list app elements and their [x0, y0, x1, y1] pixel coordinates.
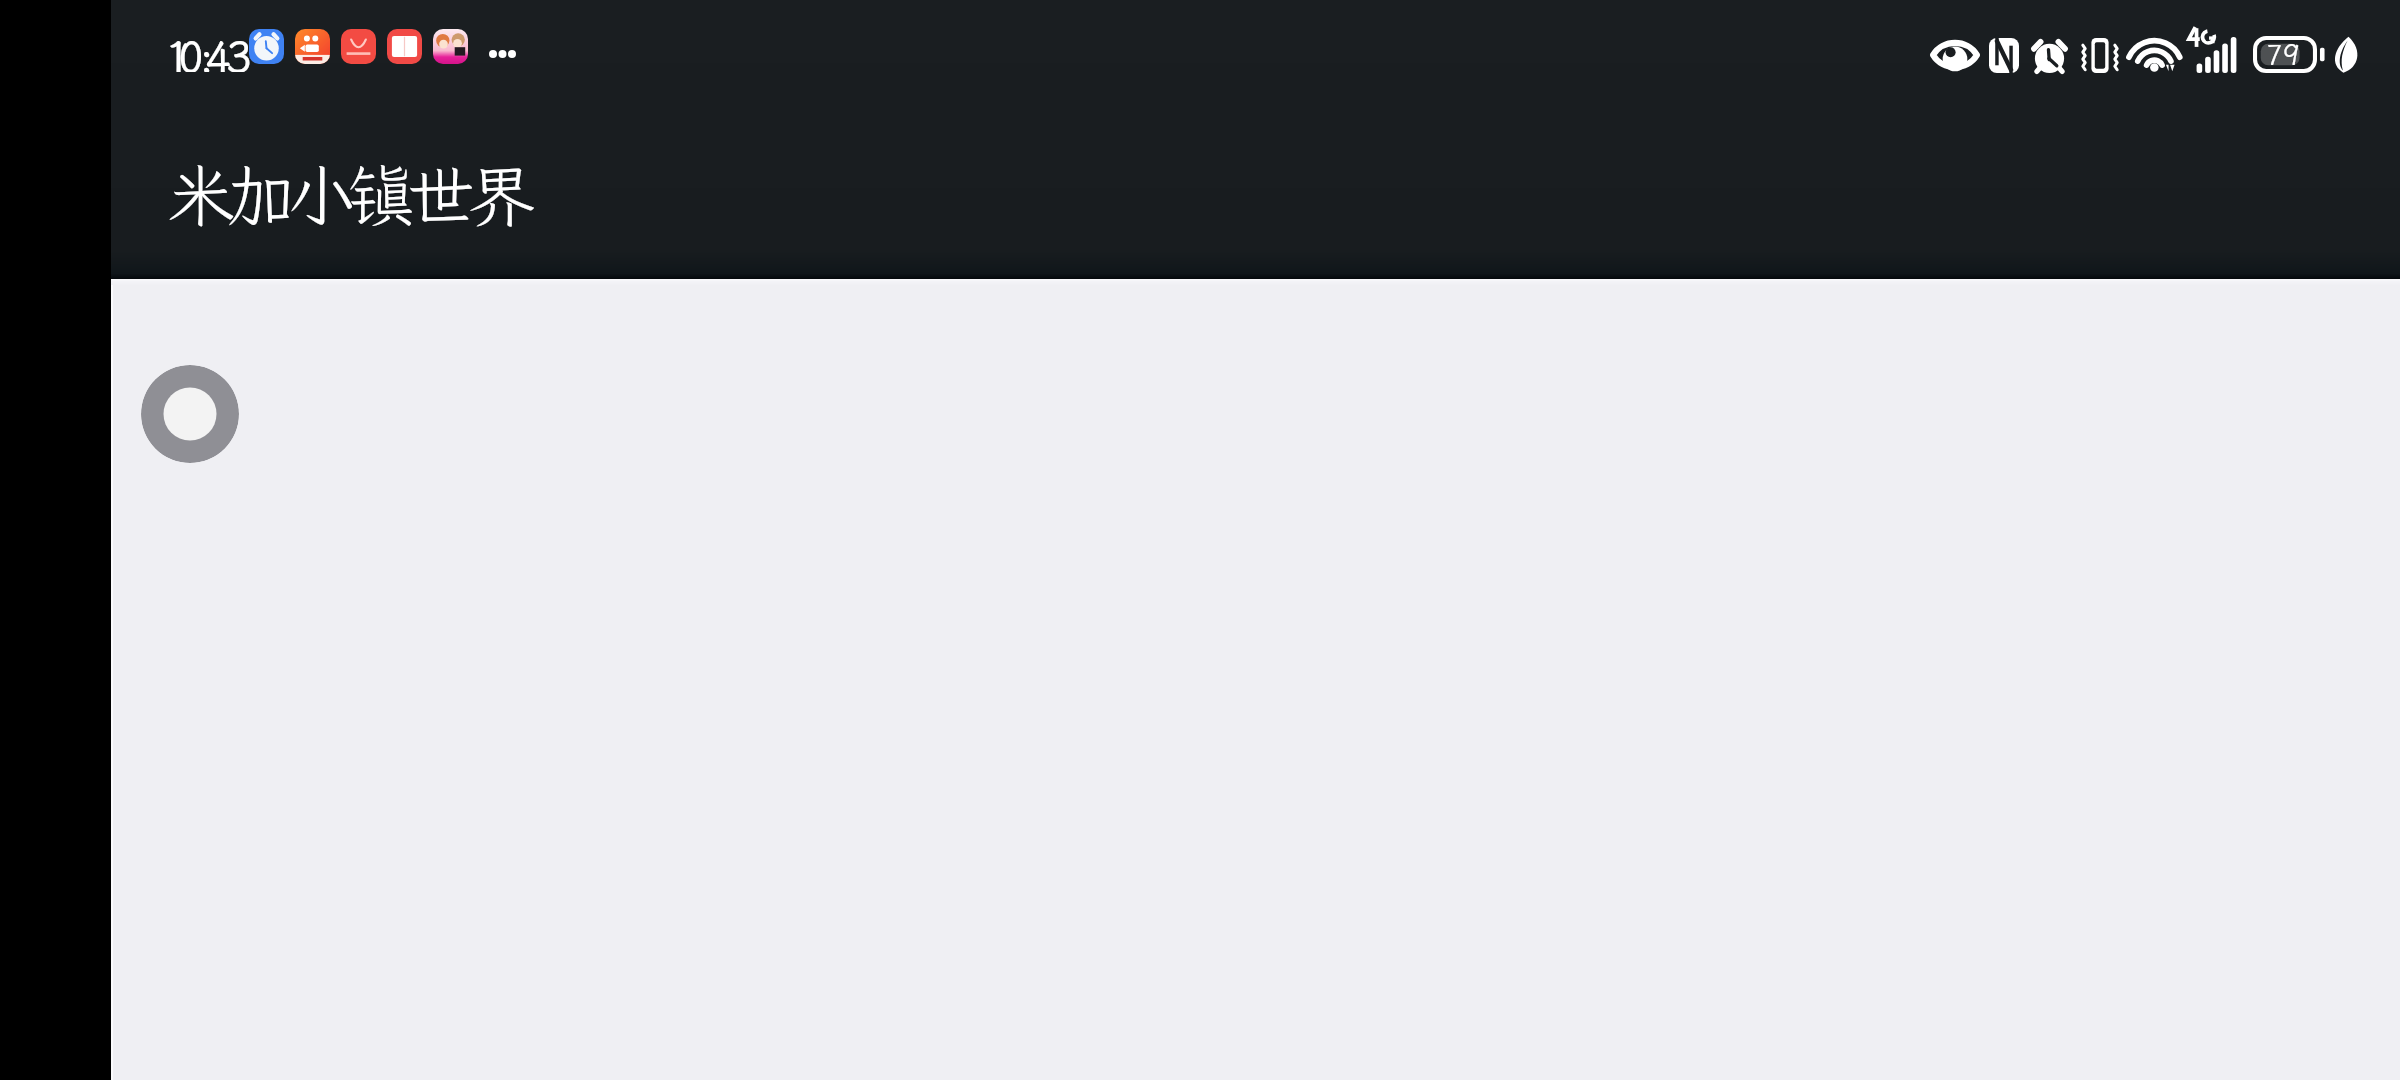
button[interactable]: Alarm app notification — [249, 29, 284, 64]
button[interactable]: Eye comfort — [1933, 41, 1977, 69]
staticText: 米加小镇世界 — [167, 150, 528, 240]
staticText: 79 — [2266, 36, 2300, 73]
button[interactable]: Reader app notification — [387, 29, 422, 64]
button[interactable]: More notifications — [483, 38, 521, 70]
staticText: 0 — [178, 28, 204, 72]
button[interactable]: Video app notification — [295, 29, 330, 64]
button[interactable]: Vibrate mode — [2080, 37, 2120, 74]
button[interactable]: Clock 10:43 — [165, 28, 249, 72]
button[interactable]: NFC — [1989, 38, 2019, 73]
button[interactable]: Power saving — [2330, 36, 2358, 73]
button[interactable]: Wi-Fi connected — [2135, 38, 2178, 72]
staticText: 3 — [226, 28, 252, 72]
button[interactable]: Mobile signal — [2195, 35, 2240, 73]
button[interactable]: Battery 79 percent — [2253, 36, 2327, 73]
staticText: 4 — [205, 28, 231, 72]
button[interactable]: 4G network — [2188, 26, 2216, 48]
staticText: 1 — [165, 28, 191, 72]
button[interactable]: 米加小镇世界 — [155, 140, 545, 236]
button[interactable]: Loading — [141, 365, 239, 463]
button[interactable]: Game app notification — [433, 29, 468, 64]
button[interactable]: Alarm set — [2031, 37, 2068, 74]
staticText: : — [199, 28, 215, 72]
button[interactable]: HUAWEI app notification — [341, 29, 376, 64]
